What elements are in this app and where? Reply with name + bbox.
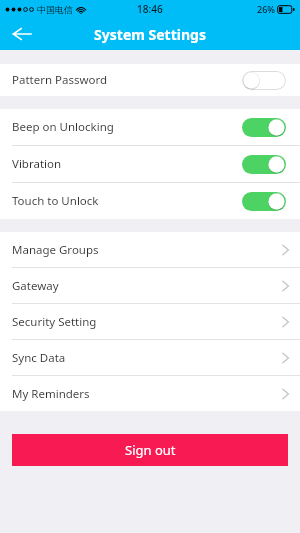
button[interactable]: Gateway: [0, 268, 300, 303]
button[interactable]: Beep on Unlocking: [0, 109, 300, 145]
button[interactable]: Pattern Password: [0, 64, 300, 96]
staticText: Touch to Unlock: [12, 193, 99, 209]
button[interactable]: Manage Groups: [0, 232, 300, 267]
staticText: Security Setting: [12, 314, 97, 330]
staticText: 26%: [257, 3, 275, 15]
staticText: Manage Groups: [12, 242, 99, 258]
button[interactable]: Touch to Unlock: [0, 183, 300, 219]
staticText: 中国电信: [37, 4, 73, 15]
staticText: Gateway: [12, 278, 59, 294]
button[interactable]: Vibration: [0, 146, 300, 182]
staticText: Beep on Unlocking: [12, 119, 114, 135]
button[interactable]: Security Setting: [0, 304, 300, 339]
staticText: 18:46: [137, 2, 163, 16]
button[interactable]: My Reminders: [0, 376, 300, 411]
staticText: Vibration: [12, 156, 62, 172]
staticText: My Reminders: [12, 386, 90, 402]
staticText: Sign out: [125, 441, 176, 459]
button[interactable]: Toggle on: [242, 192, 286, 211]
button[interactable]: Toggle on: [242, 155, 286, 174]
button[interactable]: Toggle off: [242, 71, 286, 90]
button[interactable]: Back: [0, 18, 44, 50]
staticText: Pattern Password: [12, 72, 108, 88]
staticText: System Settings: [94, 25, 206, 44]
button[interactable]: Sync Data: [0, 340, 300, 375]
button[interactable]: Sign out: [12, 434, 288, 466]
button[interactable]: Toggle on: [242, 118, 286, 137]
staticText: Sync Data: [12, 350, 66, 366]
